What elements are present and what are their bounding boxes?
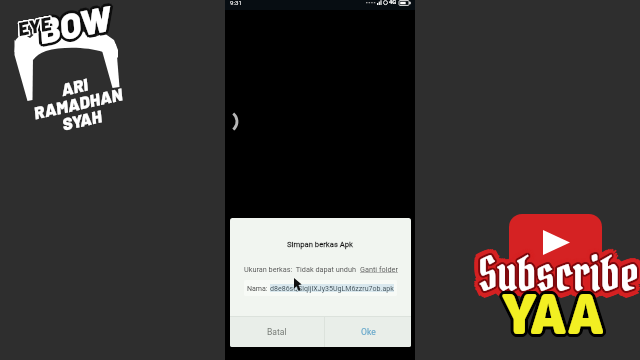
staticText: Subscribe xyxy=(479,245,640,307)
staticText: BOW xyxy=(34,0,115,53)
staticText: Subscribe xyxy=(474,244,636,306)
staticText: Subscribe xyxy=(479,241,640,303)
staticText: Subscribe xyxy=(473,248,635,310)
staticText: BOW xyxy=(38,0,118,50)
staticText: BOW xyxy=(35,0,115,50)
staticText: Subscribe xyxy=(478,237,640,299)
button[interactable]: Oke xyxy=(325,317,411,347)
staticText: Subscribe xyxy=(476,244,638,306)
staticText: BOW xyxy=(37,0,117,50)
staticText: Subscribe xyxy=(478,241,640,303)
staticText: BOW xyxy=(35,0,116,54)
staticText: BOW xyxy=(33,0,114,53)
staticText: Subscribe xyxy=(479,242,640,304)
staticText: Subscribe xyxy=(479,244,640,306)
staticText: EYE xyxy=(15,11,53,40)
staticText: Subscribe xyxy=(478,244,640,306)
button[interactable]: Nama: xyxy=(244,280,397,296)
staticText: Subscribe xyxy=(478,248,640,310)
staticText: Simpan berkas Apk xyxy=(287,240,354,249)
staticText: EYE xyxy=(16,12,54,41)
staticText: BOW xyxy=(32,0,113,49)
staticText: Subscribe xyxy=(477,243,639,305)
staticText: BOW xyxy=(34,0,114,51)
staticText: BOW xyxy=(34,0,114,51)
staticText: Subscribe xyxy=(481,243,640,305)
staticText: Subscribe xyxy=(478,245,640,307)
staticText: BOW xyxy=(36,0,116,51)
staticText: Subscribe xyxy=(478,242,640,304)
button[interactable]: Ganti folder xyxy=(360,265,398,274)
staticText: Subscribe xyxy=(476,245,638,307)
staticText: EYE xyxy=(17,11,55,40)
staticText: YAA xyxy=(500,275,603,350)
staticText: Subscribe xyxy=(478,240,640,302)
staticText: YAA xyxy=(502,277,605,352)
staticText: Subscribe xyxy=(473,243,635,305)
staticText: Subscribe xyxy=(482,239,640,301)
staticText: Subscribe xyxy=(479,247,640,309)
staticText: Subscribe xyxy=(477,245,639,307)
staticText: Subscribe xyxy=(476,243,638,305)
staticText: Subscribe xyxy=(480,241,640,303)
staticText: Subscribe xyxy=(479,241,640,303)
staticText: Subscribe xyxy=(478,243,640,305)
staticText: YAA xyxy=(500,275,603,350)
staticText: Subscribe xyxy=(483,241,640,303)
staticText: Subscribe xyxy=(480,244,640,306)
staticText: Batal xyxy=(267,327,287,337)
staticText: YAA xyxy=(502,275,605,350)
staticText: BOW xyxy=(36,0,116,51)
staticText: Subscribe xyxy=(478,242,640,304)
staticText: Subscribe xyxy=(474,242,636,304)
staticText: YAA xyxy=(499,274,602,349)
staticText: EYE xyxy=(16,10,53,39)
staticText: YAA xyxy=(498,276,601,351)
staticText: Subscribe xyxy=(483,248,640,310)
staticText: Subscribe xyxy=(478,238,640,300)
staticText: Nama: xyxy=(247,284,270,292)
staticText: Subscribe xyxy=(479,245,640,307)
staticText: YAA xyxy=(500,277,603,352)
staticText: YAA xyxy=(498,275,601,350)
staticText: Subscribe xyxy=(484,241,640,303)
staticText: Subscribe xyxy=(479,244,640,306)
staticText: Subscribe xyxy=(480,245,640,307)
staticText: YAA xyxy=(504,275,607,350)
staticText: Subscribe xyxy=(480,243,640,305)
staticText: BOW xyxy=(35,0,116,52)
staticText: EYE xyxy=(16,10,53,39)
staticText: BOW xyxy=(37,0,118,53)
staticText: Subscribe xyxy=(477,243,639,305)
staticText: Subscribe xyxy=(476,242,638,304)
staticText: BOW xyxy=(33,0,114,49)
staticText: EYE xyxy=(17,12,55,41)
staticText: Subscribe xyxy=(478,244,640,306)
staticText: d8e86sQSlqljIXJy35UgLM6zzru7ob.apk xyxy=(270,284,394,292)
staticText: Subscribe xyxy=(477,243,639,305)
staticText: Subscribe xyxy=(476,238,638,300)
staticText: YAA xyxy=(503,274,606,349)
staticText: Subscribe xyxy=(481,246,640,308)
staticText: Subscribe xyxy=(478,244,640,306)
staticText: Subscribe xyxy=(478,242,640,304)
staticText: YAA xyxy=(502,277,605,352)
button[interactable]: Batal xyxy=(230,317,324,347)
staticText: YAA xyxy=(501,279,604,354)
staticText: YAA xyxy=(500,277,603,352)
staticText: Subscribe xyxy=(480,242,640,304)
staticText: Subscribe xyxy=(474,243,636,305)
staticText: Subscribe xyxy=(480,244,640,306)
staticText: Subscribe xyxy=(478,242,640,304)
staticText: Subscribe xyxy=(476,241,638,303)
staticText: Subscribe xyxy=(476,249,638,311)
staticText: BOW xyxy=(36,0,116,50)
staticText: Subscribe xyxy=(480,249,640,311)
staticText: YAA xyxy=(500,277,603,352)
staticText: Subscribe xyxy=(478,247,640,309)
staticText: Subscribe xyxy=(474,247,636,309)
staticText: 9:31 xyxy=(230,0,242,6)
button[interactable]: Subscribe xyxy=(466,206,640,360)
staticText: BOW xyxy=(35,0,116,52)
staticText: Subscribe xyxy=(479,243,640,305)
